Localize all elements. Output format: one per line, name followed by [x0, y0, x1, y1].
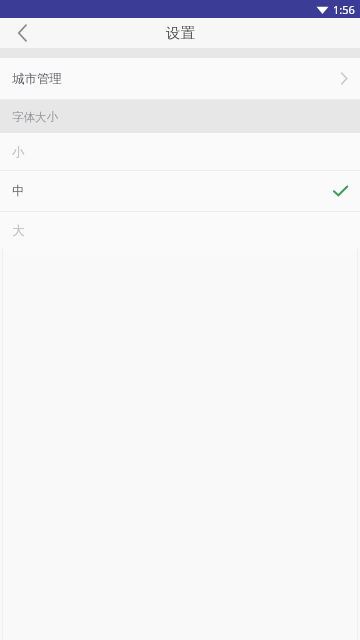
button[interactable]: Back: [0, 18, 44, 48]
staticText: 设置: [166, 24, 195, 42]
staticText: 城市管理: [12, 71, 62, 87]
staticText: 大: [12, 223, 25, 239]
staticText: 小: [12, 144, 25, 160]
button[interactable]: 中: [0, 171, 360, 211]
button[interactable]: 城市管理: [0, 58, 360, 99]
staticText: 中: [12, 183, 25, 199]
staticText: 1:56: [333, 2, 355, 17]
staticText: 字体大小: [12, 110, 58, 124]
